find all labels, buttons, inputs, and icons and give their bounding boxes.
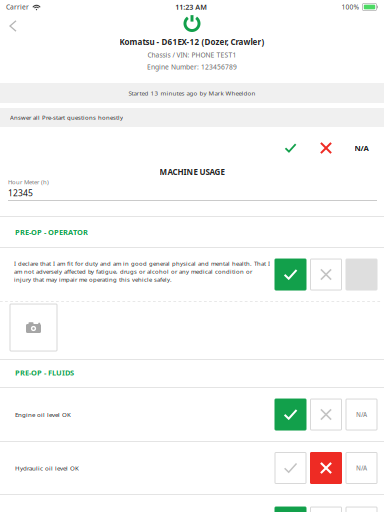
button[interactable]: Not applicable: [346, 507, 377, 512]
staticText: N/A: [356, 464, 367, 472]
staticText: N/A: [356, 410, 367, 419]
staticText: N/A: [354, 143, 368, 153]
staticText: 100%: [341, 2, 359, 12]
staticText: Engine Number: 123456789: [147, 62, 237, 72]
button[interactable]: Yes: [275, 259, 306, 290]
staticText: 11:23 AM: [175, 2, 207, 12]
button[interactable]: Add photo: [10, 304, 57, 351]
button[interactable]: Back: [0, 14, 26, 38]
staticText: Started 13 minutes ago by Mark Wheeldon: [128, 89, 255, 97]
staticText: Carrier: [6, 2, 29, 12]
button[interactable]: Not applicable: [346, 452, 377, 483]
staticText: MACHINE USAGE: [159, 167, 224, 177]
button[interactable]: No: [310, 507, 341, 512]
button[interactable]: Yes: [275, 399, 306, 430]
staticText: PRE-OP - FLUIDS: [15, 367, 74, 378]
staticText: Engine oil level OK: [15, 410, 71, 419]
staticText: Komatsu - D61EX-12 (Dozer, Crawler): [119, 37, 264, 47]
staticText: I declare that I am fit for duty and am …: [14, 259, 270, 283]
staticText: Hydraulic oil level OK: [15, 464, 79, 472]
staticText: Answer all Pre-start questions honestly: [10, 113, 123, 121]
staticText: Hour Meter (h): [8, 178, 49, 186]
staticText: Chassis / VIN: PHONE TEST1: [147, 50, 236, 60]
button[interactable]: No: [310, 452, 341, 483]
staticText: PRE-OP - OPERATOR: [15, 227, 88, 237]
staticText: 12345: [8, 187, 33, 199]
button[interactable]: Yes: [275, 452, 306, 483]
button[interactable]: No: [310, 259, 341, 290]
button[interactable]: Not applicable: [346, 399, 377, 430]
button[interactable]: No: [310, 399, 341, 430]
